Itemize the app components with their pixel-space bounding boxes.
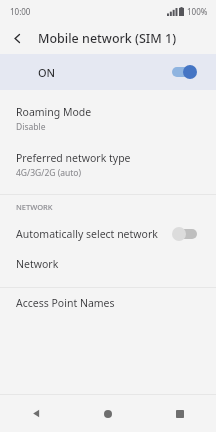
button[interactable]: Preferred network type	[0, 142, 216, 188]
staticText: Access Point Names	[16, 296, 115, 310]
staticText: Automatically select network	[16, 227, 158, 241]
staticText: 10:00	[10, 6, 31, 17]
button[interactable]: Recents	[144, 395, 216, 432]
staticText: NETWORK	[16, 202, 53, 212]
staticText: Network	[16, 257, 59, 271]
button[interactable]: Back	[6, 27, 28, 49]
staticText: Roaming Mode	[16, 105, 92, 119]
staticText: ON	[38, 65, 56, 80]
staticText: Disable	[16, 121, 46, 133]
button[interactable]: Roaming Mode	[0, 96, 216, 142]
staticText: Preferred network type	[16, 151, 131, 165]
staticText: 4G/3G/2G (auto)	[16, 167, 82, 179]
button[interactable]: Home	[72, 395, 144, 432]
button[interactable]: Back	[0, 395, 72, 432]
button[interactable]: Network	[0, 249, 216, 279]
button[interactable]: Access Point Names	[0, 288, 216, 318]
staticText: 100%	[187, 6, 208, 17]
staticText: Mobile network (SIM 1)	[38, 30, 177, 47]
button[interactable]: Automatically select network	[0, 219, 216, 249]
button[interactable]: ON	[0, 54, 216, 90]
